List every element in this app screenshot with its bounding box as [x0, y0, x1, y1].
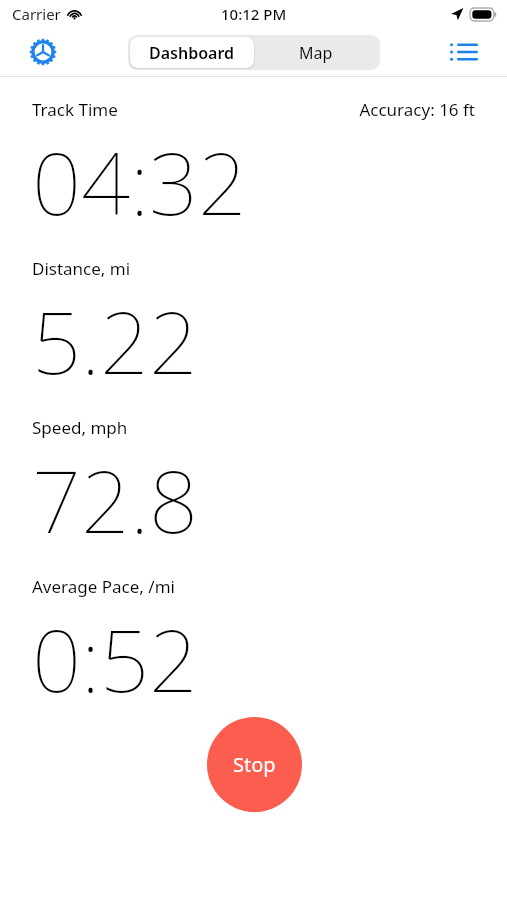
- button[interactable]: Settings: [26, 35, 60, 69]
- staticText: 5.22: [32, 282, 198, 399]
- staticText: Stop: [233, 751, 276, 778]
- button[interactable]: Track list: [447, 35, 481, 69]
- staticText: 10:12 PM: [221, 4, 287, 24]
- button[interactable]: Dashboard: [130, 37, 254, 68]
- staticText: Accuracy: 16 ft: [359, 98, 475, 121]
- staticText: Average Pace, /mi: [32, 575, 175, 598]
- staticText: 0:52: [32, 600, 198, 717]
- staticText: 72.8: [32, 441, 198, 558]
- staticText: Map: [299, 42, 333, 64]
- staticText: 04:32: [32, 123, 247, 240]
- button[interactable]: Stop: [207, 717, 302, 812]
- staticText: Track Time: [32, 98, 118, 121]
- staticText: Distance, mi: [32, 257, 131, 280]
- button[interactable]: Map: [254, 37, 378, 68]
- staticText: Speed, mph: [32, 416, 128, 439]
- staticText: Carrier: [12, 4, 61, 24]
- staticText: Dashboard: [149, 42, 235, 64]
